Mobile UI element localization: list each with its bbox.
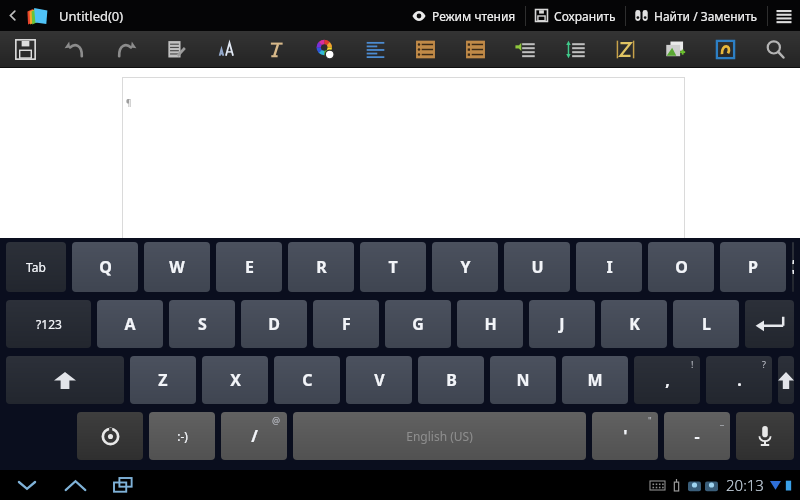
- button[interactable]: Font size: [200, 31, 250, 68]
- button[interactable]: E: [216, 242, 282, 292]
- button[interactable]: Shift: [778, 356, 794, 404]
- button[interactable]: Redo: [100, 31, 150, 68]
- button[interactable]: Align: [350, 31, 400, 68]
- button[interactable]: Search: [750, 31, 800, 68]
- staticText: Q: [99, 256, 112, 278]
- button[interactable]: :-): [149, 412, 215, 460]
- staticText: A: [124, 313, 136, 335]
- button[interactable]: Numbered list: [450, 31, 500, 68]
- button[interactable]: Backspace: [792, 242, 794, 292]
- button[interactable]: ?: [706, 356, 772, 404]
- button[interactable]: U: [504, 242, 570, 292]
- button[interactable]: K: [601, 300, 667, 348]
- button[interactable]: Menu: [768, 0, 800, 31]
- staticText: ?: [762, 358, 766, 370]
- staticText: C: [302, 369, 313, 391]
- button[interactable]: ?123: [6, 300, 91, 348]
- button[interactable]: Z: [130, 356, 196, 404]
- button[interactable]: Сохранить: [526, 0, 625, 31]
- button[interactable]: J: [529, 300, 595, 348]
- button[interactable]: R: [288, 242, 354, 292]
- staticText: @: [272, 414, 281, 426]
- staticText: T: [388, 256, 398, 278]
- staticText: U: [531, 256, 544, 278]
- staticText: I: [606, 256, 613, 278]
- button[interactable]: Hide keyboard: [8, 471, 46, 499]
- button[interactable]: C: [274, 356, 340, 404]
- button[interactable]: D: [241, 300, 307, 348]
- button[interactable]: Italic: [250, 31, 300, 68]
- button[interactable]: Save: [0, 31, 50, 68]
- button[interactable]: Undo: [50, 31, 100, 68]
- staticText: P: [748, 256, 758, 278]
- button[interactable]: Найти / Заменить: [626, 0, 767, 31]
- staticText: Untitled(0): [59, 7, 124, 25]
- button[interactable]: _: [664, 412, 730, 460]
- button[interactable]: Tab: [6, 242, 66, 292]
- staticText: F: [342, 313, 351, 335]
- button[interactable]: Q: [72, 242, 138, 292]
- button[interactable]: P: [720, 242, 786, 292]
- button[interactable]: M: [562, 356, 628, 404]
- button[interactable]: F: [313, 300, 379, 348]
- staticText: English (US): [406, 428, 473, 444]
- staticText: G: [412, 313, 424, 335]
- staticText: ,: [665, 369, 670, 391]
- staticText: Режим чтения: [432, 8, 516, 24]
- staticText: B: [446, 369, 457, 391]
- staticText: R: [316, 256, 327, 278]
- button[interactable]: Home: [56, 471, 94, 499]
- button[interactable]: N: [490, 356, 556, 404]
- button[interactable]: G: [385, 300, 451, 348]
- button[interactable]: H: [457, 300, 523, 348]
- button[interactable]: @: [221, 412, 287, 460]
- button[interactable]: L: [673, 300, 739, 348]
- staticText: ": [648, 414, 652, 426]
- button[interactable]: ¶: [122, 77, 685, 247]
- button[interactable]: Recent apps: [104, 471, 142, 499]
- button[interactable]: Indent: [500, 31, 550, 68]
- staticText: Tab: [26, 259, 46, 275]
- button[interactable]: Shift: [6, 356, 124, 404]
- button[interactable]: Export PDF: [700, 31, 750, 68]
- button[interactable]: English (US): [293, 412, 586, 460]
- staticText: Y: [460, 256, 471, 278]
- staticText: H: [484, 313, 497, 335]
- button[interactable]: Keyboard settings: [77, 412, 143, 460]
- staticText: ¶: [126, 97, 132, 108]
- staticText: 20:13: [726, 475, 764, 495]
- button[interactable]: V: [346, 356, 412, 404]
- staticText: !: [691, 358, 694, 370]
- button[interactable]: S: [169, 300, 235, 348]
- button[interactable]: T: [360, 242, 426, 292]
- button[interactable]: Text color: [300, 31, 350, 68]
- button[interactable]: X: [202, 356, 268, 404]
- button[interactable]: Режим чтения: [403, 0, 525, 31]
- button[interactable]: Enter: [745, 300, 794, 348]
- staticText: _: [720, 414, 724, 426]
- button[interactable]: Voice input: [736, 412, 794, 460]
- button[interactable]: Page break: [600, 31, 650, 68]
- button[interactable]: B: [418, 356, 484, 404]
- button[interactable]: Notes: [150, 31, 200, 68]
- staticText: W: [169, 256, 185, 278]
- button[interactable]: Insert image: [650, 31, 700, 68]
- staticText: L: [702, 313, 711, 335]
- button[interactable]: O: [648, 242, 714, 292]
- staticText: Сохранить: [554, 8, 616, 24]
- button[interactable]: Y: [432, 242, 498, 292]
- staticText: O: [675, 256, 688, 278]
- button[interactable]: ": [592, 412, 658, 460]
- button[interactable]: Line spacing: [550, 31, 600, 68]
- button[interactable]: Document: [24, 3, 50, 29]
- staticText: V: [374, 369, 385, 391]
- button[interactable]: !: [634, 356, 700, 404]
- button[interactable]: Bullet list: [400, 31, 450, 68]
- staticText: :-): [177, 428, 188, 444]
- button[interactable]: A: [97, 300, 163, 348]
- button[interactable]: I: [576, 242, 642, 292]
- staticText: E: [245, 256, 254, 278]
- button[interactable]: W: [144, 242, 210, 292]
- staticText: /: [251, 425, 258, 447]
- button[interactable]: Back: [0, 0, 24, 31]
